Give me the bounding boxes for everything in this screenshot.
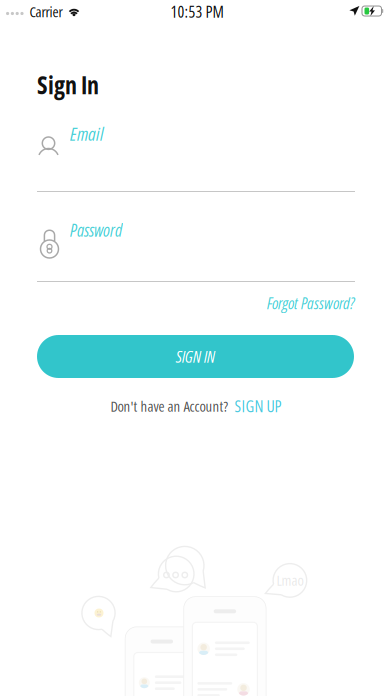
staticText: Sign In — [37, 69, 99, 101]
button[interactable]: Email — [37, 124, 355, 196]
staticText: SIGN UP — [234, 395, 281, 417]
staticText: SIGN IN — [176, 346, 215, 367]
staticText: Don't have an Account? — [110, 396, 228, 416]
staticText: Carrier — [29, 1, 62, 21]
staticText: Forgot Password? — [267, 292, 355, 314]
button[interactable]: Forgot Password? — [235, 294, 355, 312]
button[interactable]: SIGN UP — [234, 395, 281, 417]
staticText: Password — [70, 218, 122, 242]
staticText: Lmao — [276, 570, 303, 590]
button[interactable]: SIGN IN — [37, 335, 354, 378]
button[interactable]: Password — [37, 214, 355, 286]
staticText: 10:53 PM — [170, 1, 223, 22]
staticText: Email — [70, 121, 103, 146]
